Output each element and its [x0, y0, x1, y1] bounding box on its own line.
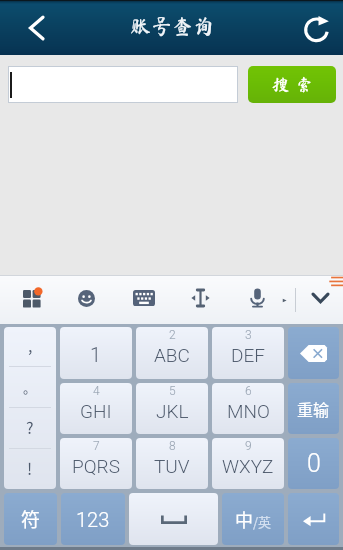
staticText: PQRS — [72, 455, 120, 477]
button[interactable]: 9 — [212, 438, 284, 489]
button[interactable]: 5 — [136, 383, 208, 434]
button[interactable]: Voice input — [240, 281, 274, 315]
staticText: ABC — [154, 344, 190, 366]
staticText: , — [28, 333, 33, 356]
button[interactable]: Punctuation — [4, 327, 56, 489]
button[interactable]: 3 — [212, 327, 284, 379]
staticText: GHI — [80, 400, 112, 422]
staticText: 5 — [169, 384, 176, 398]
staticText: 搜 — [272, 76, 289, 93]
button[interactable]: 搜 — [248, 66, 336, 103]
staticText: 2 — [169, 328, 176, 342]
staticText: 中 — [235, 506, 253, 532]
button[interactable]: Back — [0, 0, 66, 55]
staticText: ? — [26, 415, 34, 438]
staticText: 1 — [90, 343, 102, 366]
button[interactable]: 123 — [61, 493, 125, 545]
button[interactable]: 7 — [60, 438, 132, 489]
staticText: 索 — [296, 76, 313, 93]
staticText: 6 — [245, 384, 252, 398]
staticText: MNO — [227, 400, 270, 422]
button[interactable]: Space — [129, 493, 218, 545]
staticText: 8 — [169, 439, 176, 453]
button[interactable]: 2 — [136, 327, 208, 379]
staticText: 账号查询 — [130, 16, 214, 37]
button[interactable]: Keyboard — [127, 281, 161, 315]
button[interactable]: Keyboard layouts — [16, 281, 50, 315]
button[interactable]: Enter — [288, 493, 339, 545]
button[interactable]: 6 — [212, 383, 284, 434]
button[interactable]: More voice options — [279, 295, 289, 305]
button[interactable]: 重输 — [288, 383, 339, 434]
button[interactable]: Account number input — [9, 67, 237, 102]
staticText: 123 — [76, 508, 110, 531]
staticText: JKL — [156, 400, 189, 422]
staticText: 符 — [21, 505, 41, 533]
staticText: 。 — [23, 378, 37, 397]
button[interactable]: 1 — [60, 327, 132, 379]
staticText: 重输 — [297, 397, 330, 420]
button[interactable]: 8 — [136, 438, 208, 489]
staticText: 3 — [245, 328, 252, 342]
staticText: 0 — [307, 449, 321, 478]
staticText: DEF — [231, 344, 265, 366]
staticText: 4 — [93, 384, 100, 398]
button[interactable]: Emoji — [69, 281, 103, 315]
staticText: WXYZ — [222, 455, 274, 477]
button[interactable]: 0 — [288, 438, 339, 489]
staticText: 7 — [93, 439, 100, 453]
button[interactable]: Move cursor — [183, 281, 217, 315]
button[interactable]: Backspace — [288, 327, 339, 379]
staticText: TUV — [154, 455, 190, 477]
button[interactable]: Hide keyboard — [303, 281, 337, 315]
button[interactable]: Refresh — [291, 0, 343, 55]
button[interactable]: 中英切换 — [222, 493, 284, 545]
button[interactable]: 符号 — [4, 493, 57, 545]
staticText: 9 — [245, 439, 252, 453]
staticText: ! — [27, 456, 33, 479]
button[interactable]: 4 — [60, 383, 132, 434]
staticText: /英 — [253, 512, 272, 531]
